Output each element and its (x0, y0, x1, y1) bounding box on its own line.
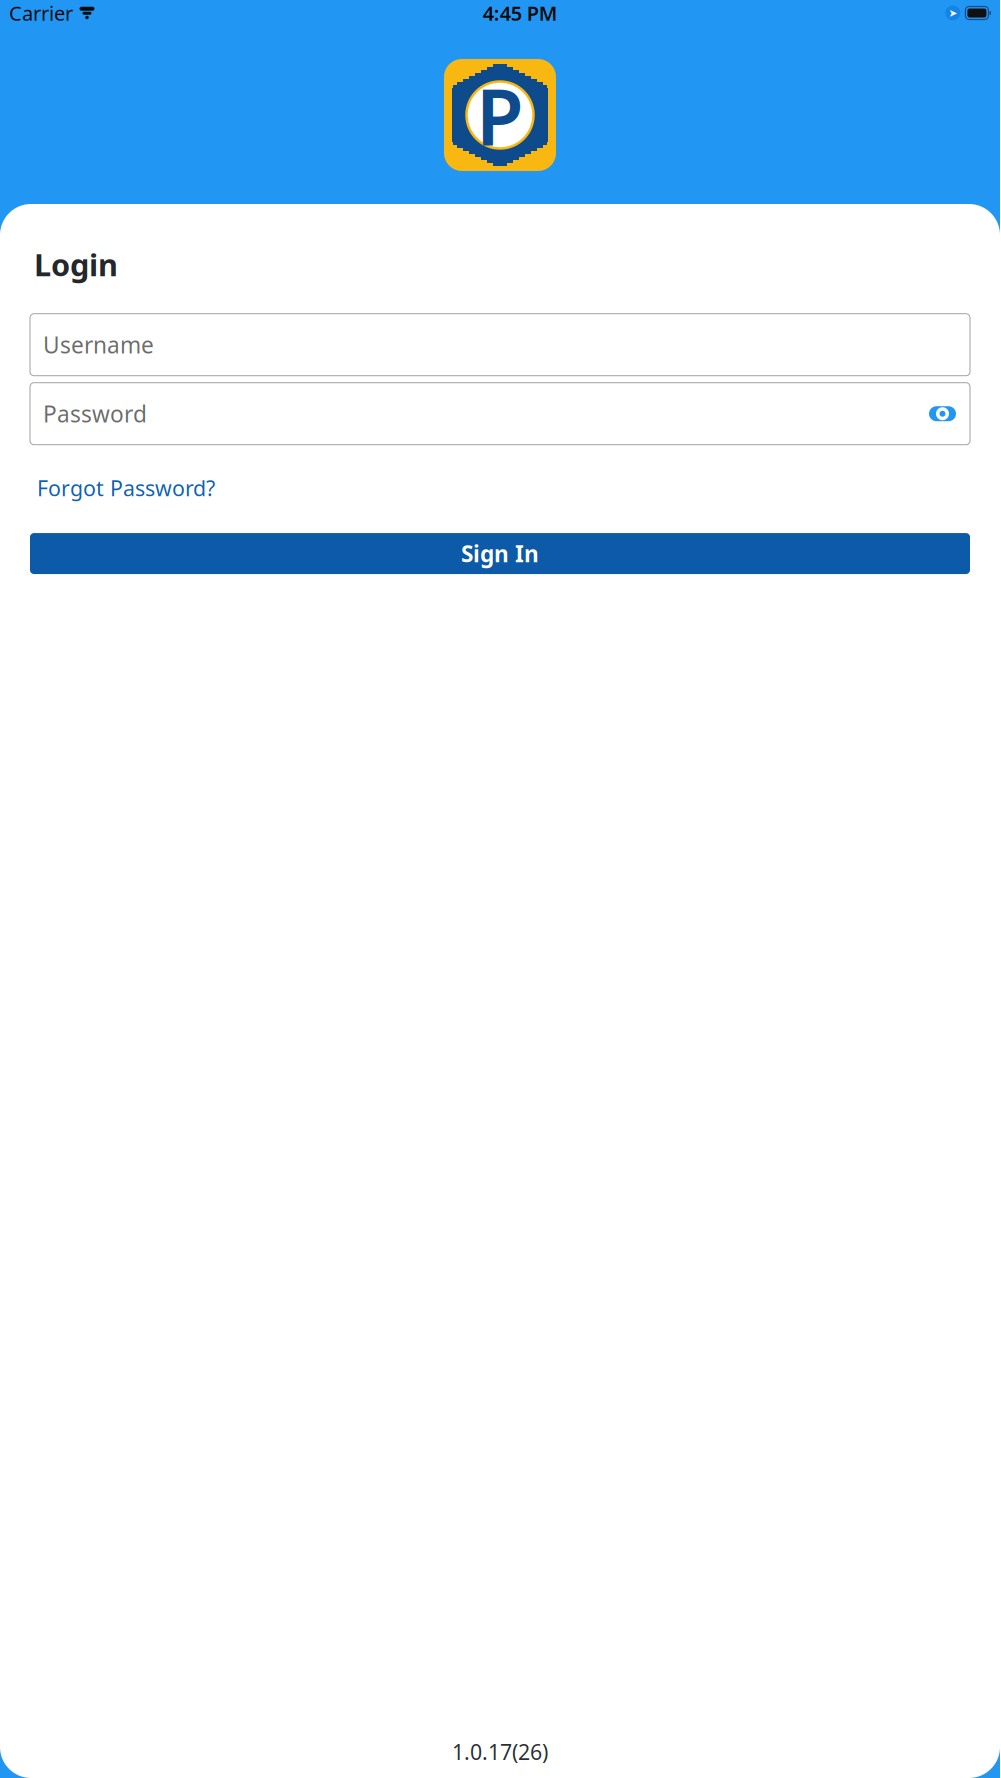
staticText: Forgot Password? (37, 474, 215, 502)
staticText: Carrier (9, 0, 73, 26)
button[interactable]: Forgot Password? (37, 469, 215, 507)
staticText: Sign In (461, 538, 539, 569)
staticText: Password (43, 399, 147, 429)
staticText: Login (34, 244, 118, 285)
button[interactable]: Sign In (30, 533, 970, 574)
button[interactable]: Username (30, 314, 970, 376)
staticText: Username (43, 330, 154, 360)
staticText: ➤ (948, 7, 957, 19)
button[interactable]: Password (30, 383, 970, 445)
staticText: 4:45 PM (483, 0, 558, 26)
staticText: P (476, 64, 524, 166)
staticText: 1.0.17(26) (452, 1738, 548, 1766)
